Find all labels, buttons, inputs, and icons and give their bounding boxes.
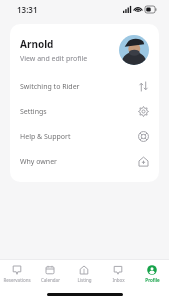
staticText: Reservations [3,277,31,283]
button[interactable]: Listing [67,260,101,288]
staticText: 13:31 [17,4,38,15]
button[interactable]: Inbox [101,260,135,288]
staticText: Help & Support [20,132,138,142]
button[interactable]: Reservations [0,260,33,288]
button[interactable]: Help & Support [20,124,149,149]
staticText: Switching to Rider [20,82,138,92]
staticText: Profile [145,277,160,283]
button[interactable]: Arnold [20,24,149,74]
staticText: Inbox [112,277,125,283]
button[interactable]: Calendar [33,260,67,288]
button[interactable]: Settings [20,99,149,124]
button[interactable]: Switching to Rider [20,74,149,99]
button[interactable]: Profile [135,260,169,288]
staticText: View and edit profile [20,54,88,64]
button[interactable]: Why owner [20,149,149,174]
staticText: Listing [77,277,92,283]
staticText: Why owner [20,157,138,167]
staticText: Calendar [41,277,60,283]
staticText: Arnold [20,37,54,51]
staticText: Settings [20,107,138,117]
other: Profile photo [119,35,149,65]
